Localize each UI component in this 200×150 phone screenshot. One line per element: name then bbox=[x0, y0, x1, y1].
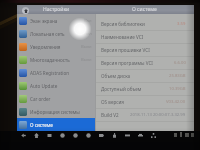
staticText: Версия программы VCI bbox=[101, 60, 153, 66]
staticText: Уведомления bbox=[30, 44, 61, 50]
staticText: Auto Update bbox=[30, 83, 58, 89]
button[interactable]: Информация системы bbox=[17, 105, 95, 118]
button[interactable]: Наименование VCI bbox=[96, 31, 194, 43]
staticText: 2018-11-13 20:00:07-3.32.99 bbox=[130, 112, 186, 118]
button[interactable]: Vehicle bbox=[134, 131, 147, 140]
staticText: О системе bbox=[132, 6, 157, 13]
button[interactable]: Версия прошивки VCI bbox=[96, 44, 194, 56]
staticText: Настройки bbox=[43, 6, 70, 13]
staticText: 3.59 bbox=[177, 21, 186, 27]
button[interactable]: Версия программы VCI bbox=[96, 57, 194, 69]
button[interactable]: Recent apps bbox=[43, 131, 56, 140]
staticText: Car order bbox=[30, 96, 51, 102]
staticText: 10.39GB bbox=[169, 86, 186, 92]
button[interactable]: Auto Update bbox=[17, 79, 95, 92]
staticText: Вкл bbox=[84, 18, 92, 24]
staticText: 6.6.00 bbox=[174, 60, 186, 66]
staticText: Версия библиотеки bbox=[101, 21, 145, 27]
staticText: Доступный объем bbox=[101, 86, 142, 92]
staticText: Локальная сеть bbox=[30, 31, 65, 37]
button[interactable]: Версия библиотеки bbox=[96, 18, 194, 30]
staticText: О системе bbox=[30, 122, 53, 128]
button[interactable]: Многозадачность bbox=[17, 53, 95, 66]
staticText: Выкл bbox=[81, 44, 92, 50]
staticText: Многозадачность bbox=[30, 57, 70, 63]
staticText: ADAS Registration bbox=[30, 70, 70, 76]
staticText: Выкл bbox=[81, 57, 92, 63]
button[interactable]: Home bbox=[22, 7, 29, 14]
staticText: Наименование VCI bbox=[101, 34, 144, 40]
button[interactable]: Volume up bbox=[69, 131, 82, 140]
staticText: Экан экрана bbox=[30, 18, 58, 24]
staticText: Объем диска bbox=[101, 73, 131, 79]
staticText: Информация системы bbox=[30, 109, 80, 115]
staticText: Build V2 bbox=[101, 112, 119, 118]
button[interactable]: Screenshot bbox=[82, 131, 95, 140]
button[interactable]: Volume down bbox=[56, 131, 69, 140]
button[interactable]: ADAS Registration bbox=[17, 66, 95, 79]
staticText: V03.42.00 bbox=[166, 99, 186, 105]
button[interactable]: Уведомления bbox=[17, 40, 95, 53]
button[interactable]: OS версия bbox=[96, 96, 194, 108]
button[interactable]: Apps bbox=[108, 131, 121, 140]
button[interactable]: Network bbox=[147, 131, 160, 140]
button[interactable]: Доступный объем bbox=[96, 83, 194, 95]
button[interactable]: VCI bbox=[121, 131, 134, 140]
button[interactable]: Объем диска bbox=[96, 70, 194, 82]
staticText: OS версия bbox=[101, 99, 124, 105]
staticText: Версия прошивки VCI bbox=[101, 47, 150, 53]
button[interactable]: О системе bbox=[17, 118, 95, 131]
staticText: 25.83GB bbox=[169, 73, 186, 79]
button[interactable]: Экан экрана bbox=[17, 14, 95, 27]
button[interactable]: Home bbox=[30, 131, 43, 140]
staticText: Откл bbox=[82, 31, 92, 37]
button[interactable]: Battery bbox=[95, 131, 108, 140]
button[interactable]: Car order bbox=[17, 92, 95, 105]
button[interactable]: Локальная сеть bbox=[17, 27, 95, 40]
button[interactable]: Build V2 bbox=[96, 109, 194, 121]
button[interactable]: Back bbox=[17, 131, 30, 140]
